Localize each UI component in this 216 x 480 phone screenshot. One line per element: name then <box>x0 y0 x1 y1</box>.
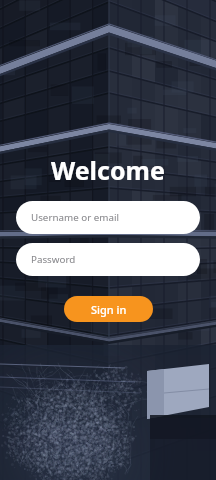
button[interactable]: Sign in <box>64 296 153 322</box>
staticText: Sign in <box>91 302 127 317</box>
staticText: Welcome <box>51 153 165 187</box>
button[interactable]: Username or email <box>16 201 200 234</box>
staticText: Password <box>31 253 76 266</box>
staticText: Username or email <box>31 211 119 224</box>
button[interactable]: Password <box>16 243 200 276</box>
